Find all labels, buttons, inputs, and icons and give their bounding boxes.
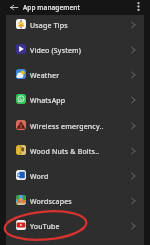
button[interactable]: WhatsApp (6, 86, 144, 111)
staticText: WhatsApp (30, 96, 128, 106)
staticText: Weather (30, 71, 128, 81)
button[interactable]: Back (7, 1, 21, 13)
staticText: Wireless emergency.. (30, 122, 128, 132)
button[interactable]: Video (System) (6, 36, 144, 61)
staticText: App management (23, 3, 81, 12)
staticText: Word (30, 172, 128, 182)
staticText: Usage Tips (30, 21, 128, 31)
staticText: YouTube (30, 222, 128, 232)
button[interactable]: Wordscapes (6, 187, 144, 212)
button[interactable]: More options (131, 0, 144, 14)
button[interactable]: Weather (6, 61, 144, 86)
staticText: Wood Nuts & Bolts.. (30, 147, 128, 157)
button[interactable]: Word (6, 162, 144, 187)
button[interactable]: Usage Tips (6, 11, 144, 36)
staticText: Video (System) (30, 46, 128, 56)
button[interactable]: YouTube (6, 212, 144, 237)
staticText: Wordscapes (30, 197, 128, 207)
button[interactable]: Wood Nuts & Bolts.. (6, 137, 144, 162)
button[interactable]: Wireless emergency.. (6, 112, 144, 137)
